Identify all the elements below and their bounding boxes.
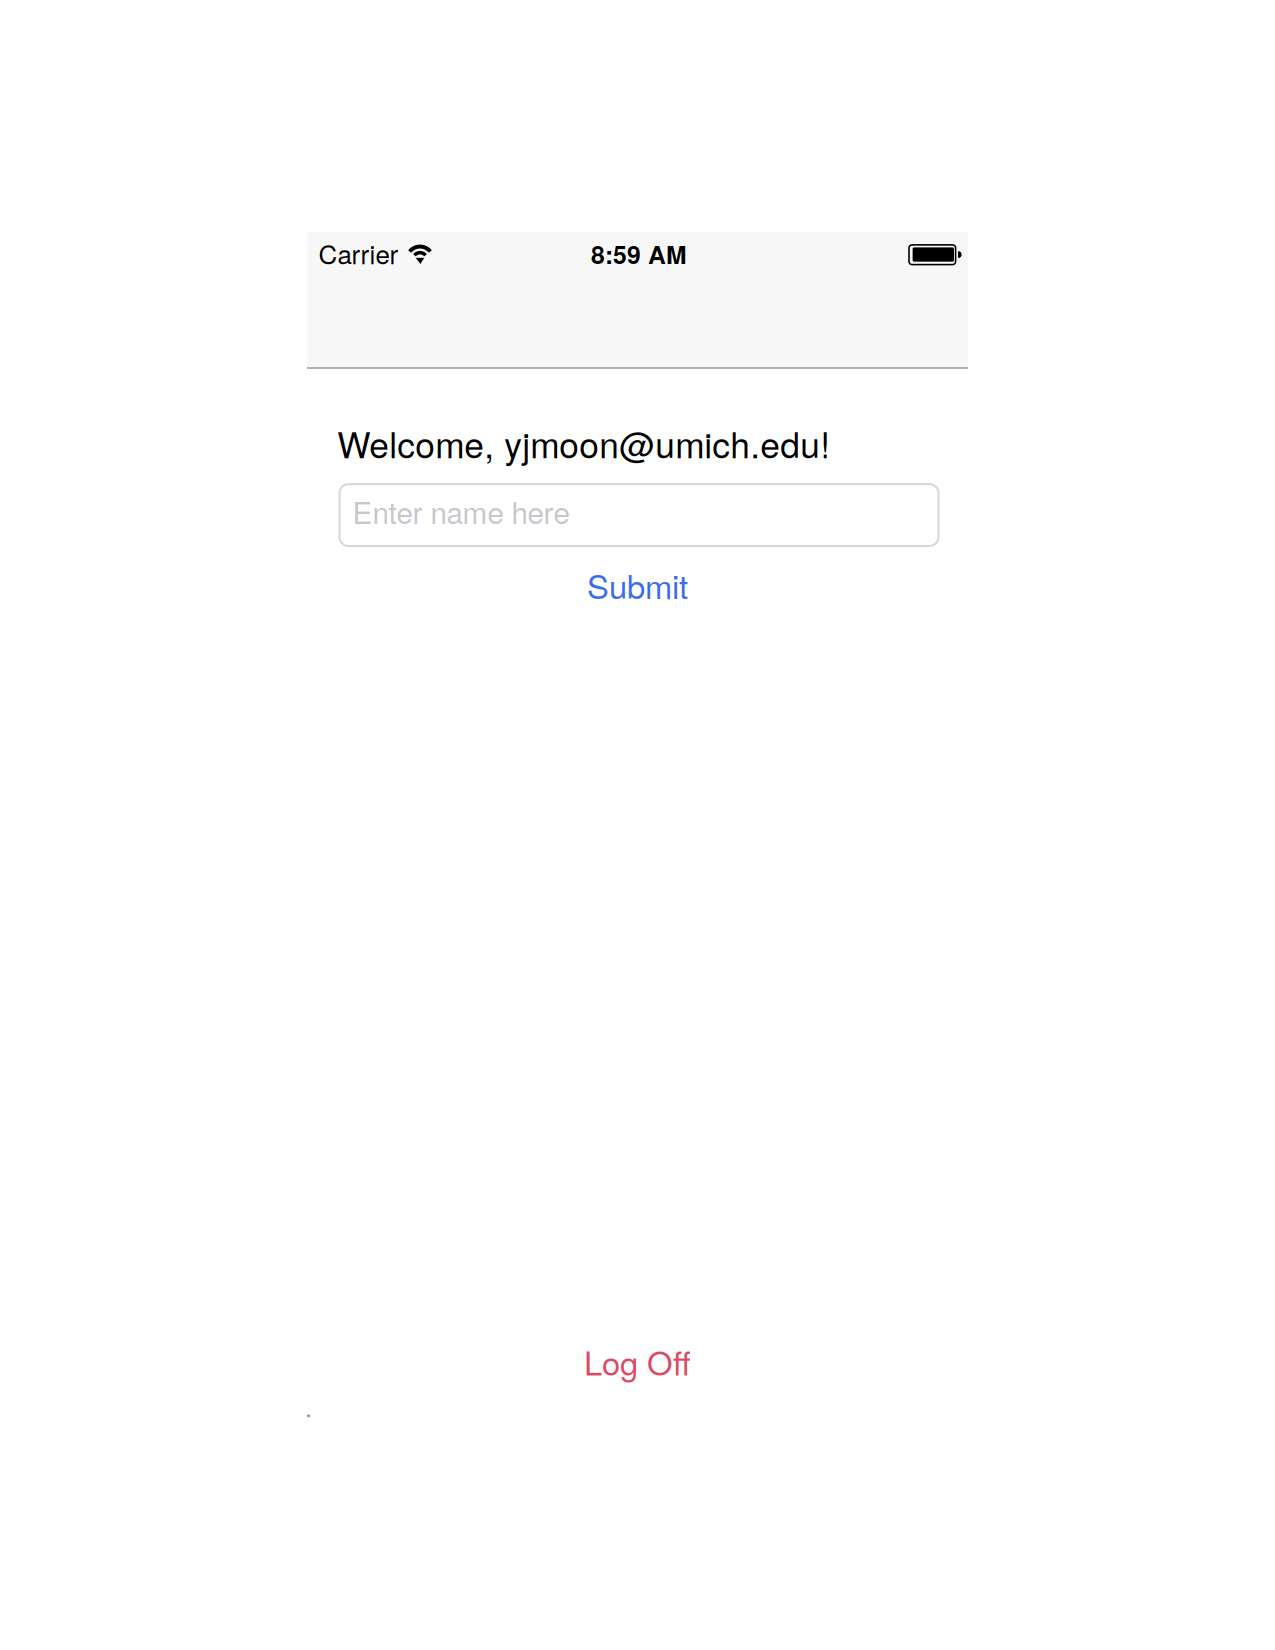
staticText: Welcome, yjmoon@umich.edu! — [337, 418, 830, 468]
button[interactable]: Enter name here — [339, 484, 938, 546]
staticText: 8:59 AM — [591, 236, 687, 272]
staticText: Log Off — [584, 1338, 691, 1385]
staticText: Enter name here — [352, 490, 569, 532]
button[interactable]: Submit — [307, 539, 968, 630]
staticText: Carrier — [319, 234, 399, 271]
button[interactable]: Log Off — [307, 1316, 968, 1407]
staticText: Submit — [587, 561, 688, 608]
